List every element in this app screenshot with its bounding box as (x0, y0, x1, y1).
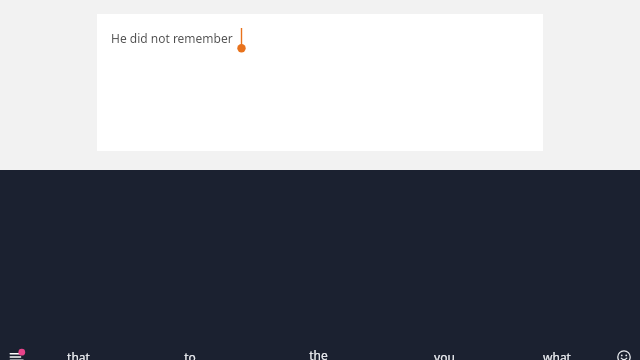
button[interactable]: what (505, 342, 609, 360)
button[interactable]: Keyboard settings (0, 342, 34, 360)
button[interactable]: the (266, 342, 370, 360)
button[interactable]: Emoji (608, 342, 640, 360)
button[interactable]: to (138, 342, 242, 360)
staticText: that (67, 349, 90, 360)
button[interactable]: that (26, 342, 130, 360)
staticText: to (184, 349, 196, 360)
staticText: the (309, 347, 328, 360)
staticText: He did not remember (111, 30, 233, 46)
staticText: you (434, 349, 455, 360)
staticText: what (543, 349, 571, 360)
button[interactable]: He did not remember (97, 14, 543, 151)
button[interactable]: you (392, 342, 496, 360)
